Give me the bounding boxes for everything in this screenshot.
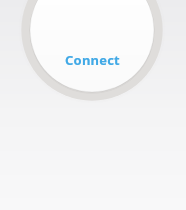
staticText: Connect	[65, 51, 120, 69]
button[interactable]: Connect	[18, 0, 166, 104]
